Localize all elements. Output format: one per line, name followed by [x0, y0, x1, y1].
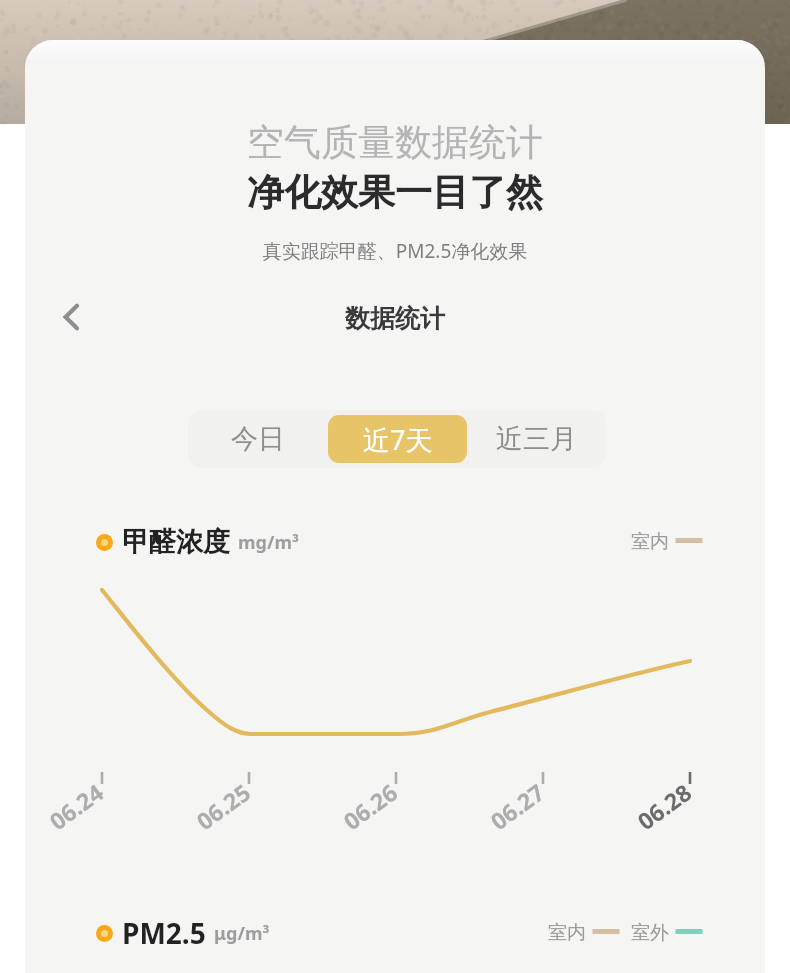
staticText: 空气质量数据统计	[25, 119, 765, 166]
staticText: 净化效果一目了然	[25, 169, 765, 216]
button[interactable]: 今日	[188, 415, 328, 463]
button[interactable]: Back	[43, 289, 99, 345]
staticText: 数据统计	[25, 303, 765, 334]
staticText: 室外	[631, 921, 669, 945]
staticText: 近7天	[363, 421, 433, 458]
staticText: PM2.5	[122, 914, 206, 952]
staticText: μg/m³	[214, 921, 270, 946]
staticText: 真实跟踪甲醛、PM2.5净化效果	[25, 238, 765, 264]
staticText: 近三月	[496, 422, 577, 456]
staticText: 室内	[631, 530, 669, 554]
staticText: 甲醛浓度	[122, 525, 230, 559]
staticText: 今日	[231, 422, 285, 456]
button[interactable]: 近7天	[328, 415, 467, 463]
button[interactable]: 近三月	[467, 415, 606, 463]
staticText: 室内	[548, 921, 586, 945]
staticText: mg/m³	[238, 530, 299, 555]
